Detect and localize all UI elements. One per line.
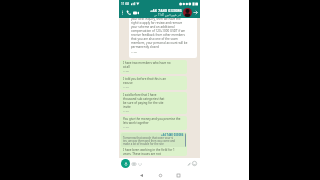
staticText: 11:58 [121, 2, 130, 6]
staticText: You give the money and you promise the [123, 117, 181, 121]
staticText: be sure of paying for the site [123, 101, 164, 105]
staticText: permanently closed [131, 45, 159, 49]
staticText: +44 7440 033086 [150, 8, 182, 13]
staticText: years. These issues are not [123, 152, 161, 155]
staticText: 11:57 [123, 126, 129, 129]
button[interactable]: Video call [132, 8, 139, 17]
button[interactable]: Attach file [187, 162, 191, 166]
staticText: I told you before that this is an [123, 77, 167, 81]
staticText: 11:57 [123, 86, 129, 89]
staticText: members, your personal account will be [131, 41, 188, 45]
staticText: receive feedback from other members [131, 33, 185, 37]
button[interactable]: Voice message [121, 159, 130, 168]
button[interactable]: Voice call [125, 8, 132, 17]
button[interactable]: I said before that I have [120, 92, 187, 114]
staticText: I said before that I have [123, 93, 157, 97]
staticText: your best inquiry, then we have the [131, 18, 181, 21]
staticText: I have two members who have no [123, 61, 171, 65]
staticText: that you are also one of the scam [131, 37, 178, 41]
button[interactable]: your best inquiry, then we have the [129, 18, 197, 58]
staticText: آخر ظهور اليوم 11:41 ص [154, 13, 182, 17]
staticText: 11:56 [131, 51, 137, 54]
button[interactable]: You give the money and you promise the [120, 116, 187, 130]
staticText: Tomorrow that people that open your si [123, 136, 174, 139]
button[interactable]: Back [192, 8, 199, 17]
staticText: make a lot of trouble for the site [123, 142, 164, 145]
button[interactable]: I have two members who have no [120, 60, 187, 74]
staticText: at all [123, 65, 130, 69]
staticText: thousand sub categories that [123, 97, 165, 101]
button[interactable]: Contact photo [183, 8, 192, 17]
button[interactable]: More options [120, 8, 125, 17]
staticText: lets work together [123, 121, 149, 125]
staticText: your scheme and an additional [131, 25, 175, 29]
staticText: excuse [123, 81, 133, 85]
staticText: 11:57 [123, 110, 129, 113]
staticText: I have been working in the field for 1 [123, 148, 175, 152]
button[interactable]: I told you before that this is an [120, 76, 187, 90]
button[interactable]: Camera [132, 162, 136, 166]
button[interactable]: +44 7440 033086 [120, 132, 187, 156]
button[interactable]: Attach [138, 162, 142, 166]
button[interactable]: Recents [175, 172, 181, 178]
staticText: +44 7440 033086 [161, 133, 184, 136]
staticText: tes, we pay them and then you come and [123, 139, 175, 142]
staticText: invite [123, 105, 131, 109]
staticText: right to apply for review and remove [131, 21, 183, 25]
staticText: 11:56 [123, 70, 129, 73]
button[interactable]: Emoji [192, 161, 197, 166]
button[interactable]: Home [157, 172, 163, 178]
staticText: compensation of 120+1000 USDT if we [131, 29, 186, 33]
button[interactable]: Back [138, 172, 144, 178]
